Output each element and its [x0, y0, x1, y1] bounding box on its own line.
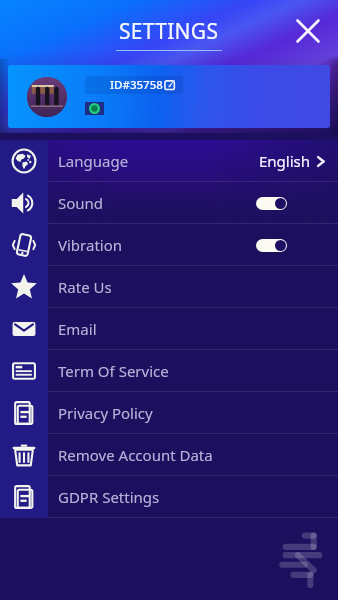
button[interactable]: Remove Account Data	[0, 434, 338, 476]
staticText: English	[259, 151, 311, 171]
button[interactable]: Term Of Service	[0, 350, 338, 392]
button[interactable]: Toggle	[256, 239, 287, 252]
staticText: SETTINGS	[119, 17, 219, 46]
button[interactable]: GDPR Settings	[0, 476, 338, 518]
button[interactable]: Language	[0, 140, 338, 182]
staticText: ID#35758	[110, 77, 163, 93]
button[interactable]: ID#35758	[8, 65, 330, 128]
button[interactable]: Vibration	[0, 224, 338, 266]
staticText: Sound	[58, 193, 104, 213]
staticText: GDPR Settings	[58, 487, 160, 507]
button[interactable]: Level badge	[85, 102, 104, 115]
staticText: Remove Account Data	[58, 445, 213, 465]
button[interactable]: ID#35758	[85, 76, 183, 94]
button[interactable]: Rate Us	[0, 266, 338, 308]
button[interactable]: Privacy Policy	[0, 392, 338, 434]
staticText: Rate Us	[58, 277, 112, 297]
staticText: Language	[58, 151, 129, 171]
staticText: Email	[58, 319, 97, 339]
button[interactable]: Sound	[0, 182, 338, 224]
staticText: Term Of Service	[58, 361, 169, 381]
staticText: Privacy Policy	[58, 403, 153, 423]
staticText: Vibration	[58, 235, 123, 255]
button[interactable]: Close	[292, 15, 324, 47]
button[interactable]: Email	[0, 308, 338, 350]
button[interactable]: Toggle	[256, 197, 287, 210]
